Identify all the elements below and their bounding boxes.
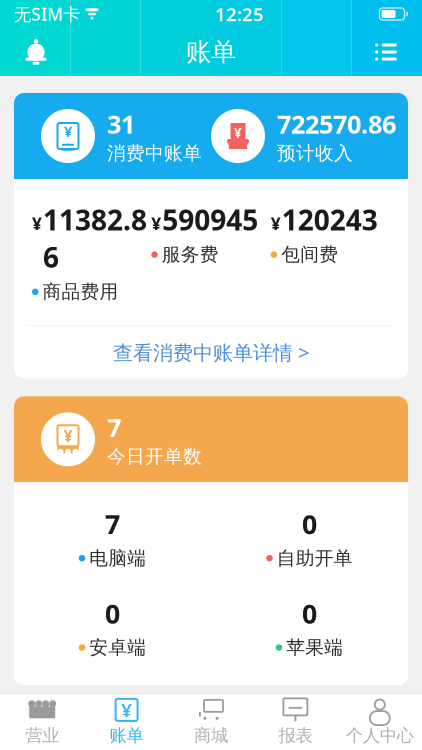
- staticText: 今日开单数: [107, 445, 202, 468]
- staticText: ¥: [151, 212, 161, 235]
- staticText: ¥: [63, 425, 72, 446]
- staticText: ¥: [271, 212, 281, 235]
- staticText: 消费中账单: [107, 142, 202, 165]
- button[interactable]: 营业: [0, 694, 84, 750]
- staticText: 7: [107, 410, 121, 444]
- button[interactable]: 查看消费中账单详情 >: [14, 326, 408, 378]
- staticText: 安卓端: [89, 636, 146, 659]
- staticText: ¥: [121, 697, 132, 722]
- staticText: 账单: [110, 725, 144, 746]
- staticText: 预计收入: [277, 142, 353, 165]
- staticText: 服务费: [162, 243, 219, 266]
- staticText: 120243: [282, 201, 378, 238]
- staticText: 自助开单: [277, 547, 353, 570]
- staticText: 商城: [194, 725, 228, 746]
- staticText: 0: [302, 596, 317, 631]
- staticText: 无SIM卡: [14, 2, 80, 25]
- staticText: 包间费: [281, 243, 338, 266]
- staticText: 7: [105, 506, 120, 542]
- button[interactable]: 通知: [8, 28, 64, 76]
- staticText: 590945: [162, 201, 258, 238]
- staticText: 商品费用: [42, 280, 118, 303]
- staticText: 12:25: [215, 2, 264, 26]
- staticText: 0: [105, 596, 120, 631]
- staticText: 722570.86: [277, 107, 396, 141]
- staticText: ¥: [234, 124, 242, 141]
- staticText: 营业: [25, 725, 59, 746]
- staticText: 苹果端: [286, 636, 343, 659]
- staticText: 账单: [186, 36, 236, 67]
- staticText: 2022-08-16 09:00 至 2022-08-17 09:00: [42, 707, 379, 732]
- staticText: 报表: [278, 725, 312, 746]
- staticText: 电脑端: [89, 547, 146, 570]
- staticText: 个人中心: [346, 725, 414, 746]
- staticText: ¥: [64, 121, 72, 141]
- staticText: 0: [302, 506, 317, 542]
- staticText: 查看消费中账单详情 >: [113, 339, 309, 366]
- button[interactable]: 商城: [169, 694, 253, 750]
- button[interactable]: 报表: [253, 694, 338, 750]
- staticText: 31: [107, 107, 135, 141]
- staticText: ¥: [32, 212, 42, 235]
- button[interactable]: ¥: [84, 694, 169, 750]
- button[interactable]: 列表: [358, 28, 414, 76]
- staticText: 11382.86: [43, 201, 147, 275]
- button[interactable]: 个人中心: [338, 694, 422, 750]
